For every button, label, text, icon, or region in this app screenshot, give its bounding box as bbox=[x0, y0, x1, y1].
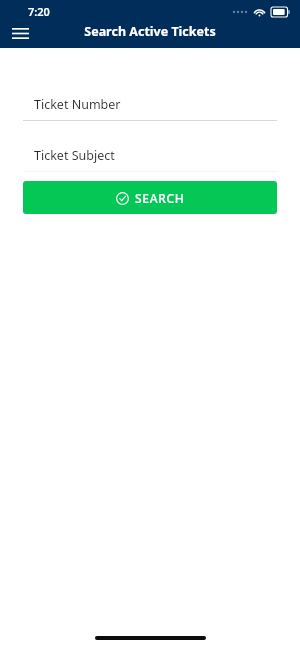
button[interactable]: Ticket Subject bbox=[0, 140, 300, 172]
button[interactable]: Ticket Number bbox=[0, 89, 300, 121]
staticText: Ticket Number bbox=[34, 96, 121, 113]
staticText: SEARCH bbox=[135, 190, 185, 206]
staticText: Ticket Subject bbox=[34, 147, 115, 164]
button[interactable]: SEARCH bbox=[23, 181, 277, 214]
button[interactable]: Open navigation menu bbox=[2, 20, 38, 46]
staticText: Search Active Tickets bbox=[84, 23, 216, 40]
staticText: 7:20 bbox=[28, 4, 50, 19]
